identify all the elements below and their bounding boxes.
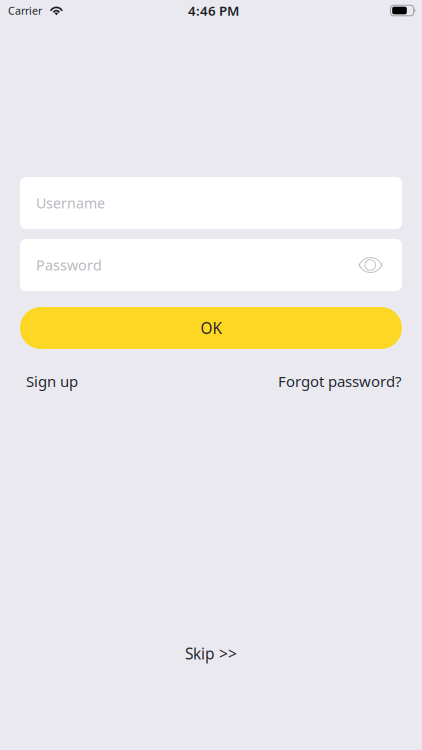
button[interactable]: Skip >> <box>185 643 237 664</box>
staticText: OK <box>200 318 221 338</box>
button[interactable]: Password <box>20 239 402 291</box>
staticText: Skip >> <box>185 643 237 664</box>
staticText: Forgot password? <box>278 371 401 391</box>
staticText: 4:46 PM <box>188 2 239 19</box>
button[interactable]: OK <box>20 307 402 349</box>
staticText: Username <box>36 193 105 213</box>
button[interactable]: Sign up <box>26 371 78 391</box>
staticText: Carrier <box>8 3 42 18</box>
button[interactable]: Forgot password? <box>278 371 401 391</box>
button[interactable]: Username <box>20 177 402 229</box>
button[interactable]: Show password <box>359 257 382 273</box>
staticText: Password <box>36 255 102 275</box>
staticText: Sign up <box>26 371 78 391</box>
